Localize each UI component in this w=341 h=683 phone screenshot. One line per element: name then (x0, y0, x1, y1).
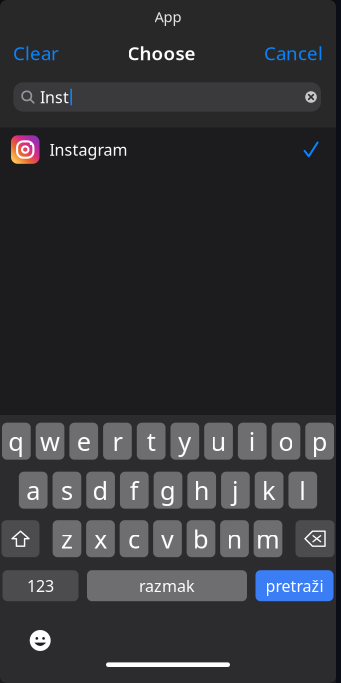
button[interactable]: u (204, 423, 233, 460)
button[interactable]: r (103, 423, 132, 460)
staticText: z (61, 522, 73, 555)
staticText: s (61, 473, 73, 507)
button[interactable]: y (170, 423, 199, 460)
staticText: r (112, 424, 122, 458)
button[interactable]: g (154, 472, 182, 509)
staticText: Choose (127, 41, 195, 65)
staticText: Clear (13, 41, 59, 65)
staticText: c (128, 522, 140, 555)
staticText: l (299, 473, 306, 507)
staticText: pretraži (265, 575, 323, 596)
button[interactable]: p (305, 423, 334, 460)
button[interactable]: d (86, 472, 115, 509)
staticText: n (226, 522, 242, 555)
staticText: x (94, 522, 107, 555)
staticText: w (40, 424, 60, 458)
button[interactable]: o (272, 423, 300, 460)
button[interactable]: h (187, 472, 216, 509)
staticText: Cancel (264, 41, 323, 65)
button[interactable]: Clear text (303, 86, 319, 108)
button[interactable]: k (255, 472, 283, 509)
button[interactable]: a (19, 472, 48, 509)
button[interactable]: v (153, 520, 182, 557)
staticText: f (130, 473, 139, 507)
button[interactable]: x (86, 520, 115, 557)
button[interactable]: e (69, 423, 98, 460)
staticText: j (232, 473, 239, 507)
staticText: p (312, 424, 328, 458)
button[interactable]: c (120, 520, 148, 557)
staticText: App (154, 7, 181, 26)
staticText: q (8, 424, 24, 458)
staticText: u (211, 424, 227, 458)
button[interactable]: j (221, 472, 250, 509)
button[interactable]: 123 (2, 570, 78, 601)
button[interactable]: pretraži (255, 570, 333, 601)
staticText: Inst (40, 86, 69, 108)
staticText: Instagram (49, 139, 127, 160)
button[interactable]: n (220, 520, 249, 557)
button[interactable]: i (238, 423, 267, 460)
staticText: 123 (27, 575, 54, 596)
button[interactable]: m (254, 520, 282, 557)
button[interactable]: w (36, 423, 64, 460)
staticText: t (147, 424, 156, 458)
button[interactable]: t (137, 423, 165, 460)
button[interactable]: Clear (13, 42, 59, 64)
staticText: b (193, 522, 209, 555)
button[interactable]: q (2, 423, 31, 460)
button[interactable]: Shift (1, 520, 39, 557)
staticText: g (160, 473, 176, 507)
button[interactable]: Delete (295, 520, 334, 557)
staticText: y (178, 424, 191, 458)
staticText: e (77, 424, 91, 458)
button[interactable]: l (288, 472, 317, 509)
button[interactable]: Instagram (0, 135, 336, 164)
staticText: v (161, 522, 174, 555)
staticText: k (262, 473, 276, 507)
staticText: o (278, 424, 293, 458)
staticText: h (194, 473, 210, 507)
button[interactable]: Emoji (30, 630, 51, 651)
button[interactable]: s (53, 472, 81, 509)
button[interactable]: z (53, 520, 81, 557)
staticText: razmak (139, 575, 195, 596)
button[interactable]: b (187, 520, 215, 557)
staticText: a (26, 473, 40, 507)
button[interactable]: Cancel (264, 42, 323, 64)
button[interactable]: f (120, 472, 149, 509)
button[interactable]: razmak (87, 570, 247, 601)
staticText: m (256, 522, 280, 555)
staticText: d (93, 473, 109, 507)
staticText: i (249, 424, 256, 458)
